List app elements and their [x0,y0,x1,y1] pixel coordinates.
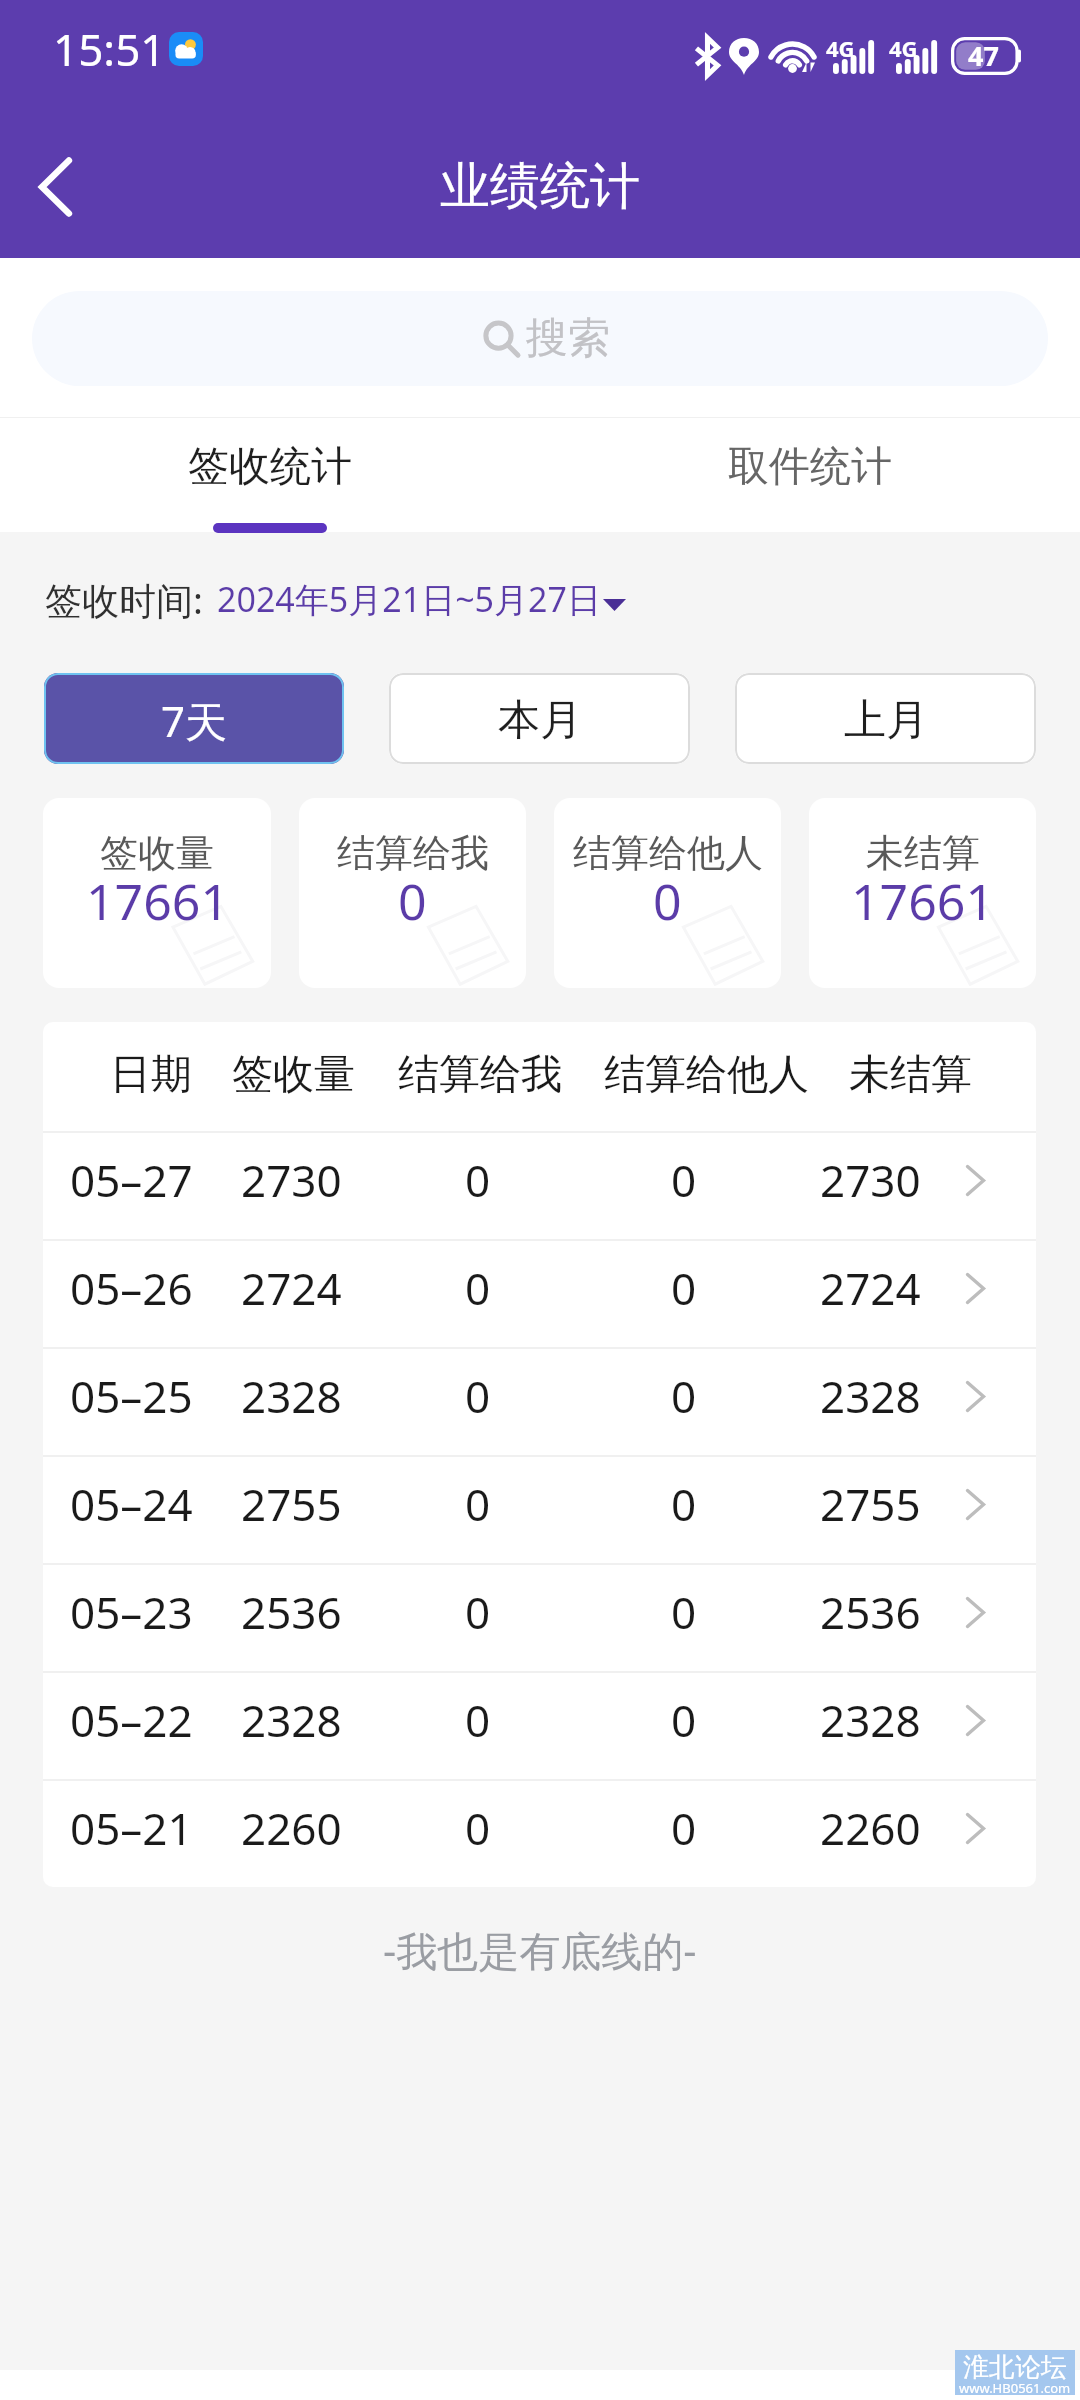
button[interactable]: 签收统计 [0,418,540,532]
staticText: 0 [465,1474,491,1534]
staticText: 17661 [851,867,994,935]
staticText: 05–23 [70,1582,193,1642]
staticText: 7天 [161,692,228,749]
button[interactable]: 05–26 [43,1241,1036,1347]
staticText: 0 [398,867,427,935]
staticText: 0 [671,1474,697,1534]
button[interactable]: 05–27 [43,1133,1036,1239]
staticText: 0 [465,1258,491,1318]
staticText: 05–27 [70,1150,193,1210]
staticText: 2724 [241,1258,342,1318]
staticText: 2260 [241,1798,342,1858]
staticText: 淮北论坛 [963,2351,1067,2384]
staticText: 15:51 [53,19,166,79]
staticText: 05–24 [70,1474,193,1534]
staticText: 2328 [241,1366,342,1426]
staticText: 日期 [110,1049,192,1101]
button[interactable]: 结算给我 [299,798,526,988]
staticText: 签收量 [100,829,214,877]
button[interactable]: 签收量 [43,798,271,988]
staticText: 0 [671,1150,697,1210]
button[interactable]: 05–22 [43,1673,1036,1779]
staticText: 业绩统计 [440,155,640,218]
staticText: 未结算 [866,829,980,877]
staticText: 结算给我 [398,1049,562,1101]
button[interactable]: 上月 [735,673,1036,764]
staticText: 0 [465,1582,491,1642]
button[interactable]: 取件统计 [540,418,1080,532]
staticText: 47 [968,37,999,74]
staticText: 0 [671,1690,697,1750]
staticText: 搜索 [526,312,610,365]
staticText: 0 [671,1366,697,1426]
staticText: 结算给他人 [604,1049,809,1101]
staticText: 2328 [820,1690,921,1750]
staticText: 结算给他人 [573,829,763,877]
staticText: 0 [653,867,682,935]
staticText: 2730 [820,1150,921,1210]
staticText: 0 [465,1690,491,1750]
staticText: www.HB0561.com [959,2379,1071,2397]
staticText: 0 [671,1582,697,1642]
staticText: 0 [465,1798,491,1858]
staticText: 2328 [241,1690,342,1750]
staticText: 未结算 [849,1049,972,1101]
button[interactable]: 05–25 [43,1349,1036,1455]
button[interactable]: 结算给他人 [554,798,781,988]
staticText: 取件统计 [728,441,892,493]
staticText: -我也是有底线的- [383,1922,697,1978]
staticText: 2024年5月21日~5月27日 [217,576,601,622]
staticText: 4G [889,33,918,63]
staticText: 2536 [241,1582,342,1642]
staticText: 4G [826,33,855,63]
button[interactable]: 本月 [389,673,690,764]
button[interactable]: 05–24 [43,1457,1036,1563]
button[interactable]: 7天 [44,673,344,764]
staticText: 0 [671,1798,697,1858]
staticText: 0 [671,1258,697,1318]
staticText: 本月 [498,694,582,747]
staticText: 0 [465,1150,491,1210]
staticText: 结算给我 [337,829,489,877]
button[interactable]: 未结算 [809,798,1036,988]
button[interactable]: 签收时间: [45,558,1080,640]
staticText: 签收量 [232,1049,355,1101]
staticText: 2536 [820,1582,921,1642]
staticText: 上月 [844,694,928,747]
staticText: 05–26 [70,1258,193,1318]
staticText: 2755 [241,1474,342,1534]
staticText: 17661 [86,867,229,935]
staticText: 签收时间: [45,574,203,625]
staticText: 05–21 [70,1798,193,1858]
staticText: 2755 [820,1474,921,1534]
staticText: 2328 [820,1366,921,1426]
staticText: 05–22 [70,1690,193,1750]
staticText: 2724 [820,1258,921,1318]
staticText: 05–25 [70,1366,193,1426]
staticText: 2260 [820,1798,921,1858]
button[interactable]: 05–21 [43,1781,1036,1887]
staticText: 2730 [241,1150,342,1210]
button[interactable]: 搜索 [32,291,1048,386]
button[interactable]: 05–23 [43,1565,1036,1671]
button[interactable]: Back [12,143,100,231]
staticText: 0 [465,1366,491,1426]
staticText: 签收统计 [188,441,352,493]
